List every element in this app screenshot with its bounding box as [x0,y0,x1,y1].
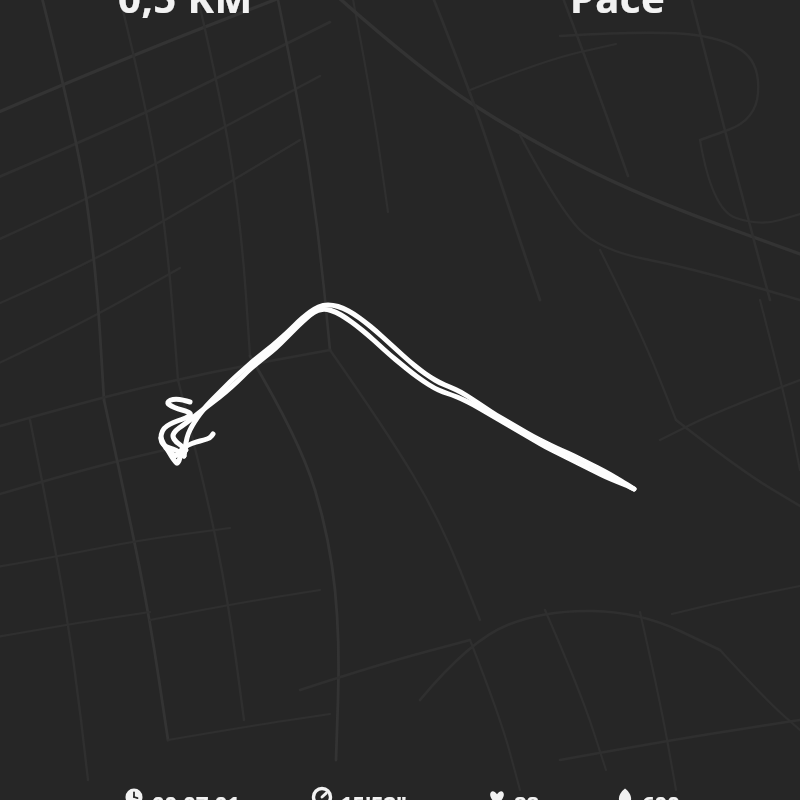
button[interactable]: Workout route map [0,0,800,800]
